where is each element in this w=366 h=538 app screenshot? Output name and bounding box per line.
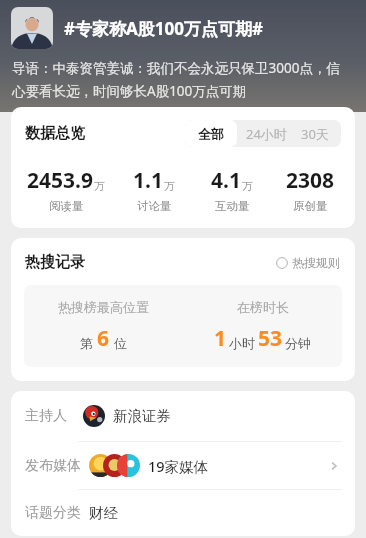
staticText: 财经	[89, 504, 118, 522]
staticText: 2308	[286, 166, 335, 195]
staticText: 原创量	[293, 199, 328, 213]
staticText: 在榜时长	[237, 299, 289, 315]
button[interactable]: 全部	[185, 120, 237, 147]
staticText: 导语：中泰资管姜诚：我们不会永远只保卫3000点，信心要看长远，时间够长A股10…	[12, 59, 350, 100]
staticText: 53	[258, 324, 283, 353]
staticText: 数据总览	[25, 124, 85, 143]
staticText: 主持人	[25, 407, 67, 425]
staticText: 互动量	[215, 199, 250, 213]
staticText: 热搜记录	[25, 253, 85, 272]
staticText: 位	[114, 335, 127, 351]
other: 查看发布媒体	[327, 459, 341, 473]
button[interactable]: 24小时	[237, 120, 296, 147]
staticText: 第	[80, 335, 93, 351]
staticText: 分钟	[285, 335, 311, 351]
staticText: 19家媒体	[148, 456, 209, 476]
staticText: 万	[242, 179, 253, 193]
staticText: 发布媒体	[25, 457, 81, 475]
staticText: 万	[94, 179, 105, 193]
button[interactable]: 话题分类	[11, 490, 355, 536]
staticText: 万	[164, 179, 175, 193]
staticText: #专家称A股100万点可期#	[64, 17, 263, 40]
staticText: 1	[214, 324, 227, 353]
staticText: 全部	[198, 126, 224, 142]
button[interactable]: 30天	[296, 120, 341, 147]
staticText: 新浪证券	[113, 407, 171, 425]
staticText: 1.1	[133, 166, 163, 195]
button[interactable]: 主持人	[11, 391, 355, 441]
staticText: 30天	[301, 125, 329, 143]
staticText: 4.1	[211, 166, 241, 195]
button[interactable]: 发布媒体	[11, 442, 355, 489]
button[interactable]: 热搜规则	[272, 251, 344, 274]
staticText: 热搜榜最高位置	[58, 299, 149, 315]
staticText: 话题分类	[25, 504, 81, 522]
staticText: 阅读量	[49, 199, 84, 213]
staticText: 讨论量	[137, 199, 172, 213]
staticText: 6	[97, 324, 110, 353]
staticText: 热搜规则	[292, 255, 340, 270]
staticText: 24小时	[246, 125, 287, 143]
staticText: 2453.9	[27, 166, 93, 195]
staticText: 小时	[229, 335, 255, 351]
